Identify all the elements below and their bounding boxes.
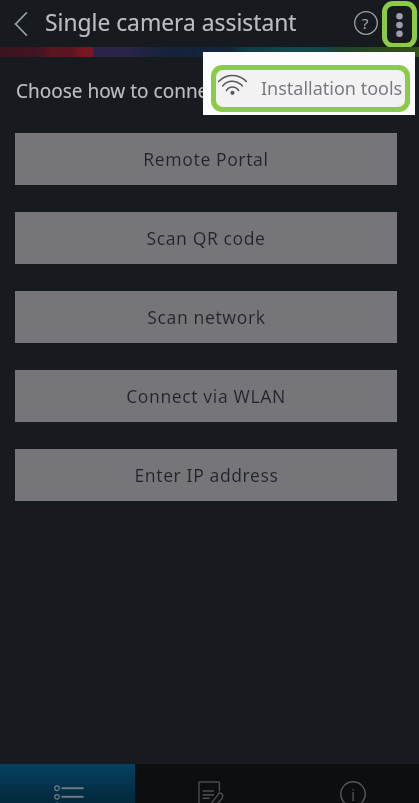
button[interactable]: Connect via WLAN — [15, 370, 397, 422]
button[interactable]: Information — [277, 764, 419, 803]
staticText: Scan QR code — [146, 226, 266, 250]
staticText: Remote Portal — [143, 147, 269, 171]
staticText: Connect via WLAN — [126, 384, 286, 408]
button[interactable]: Enter IP address — [15, 449, 397, 501]
button[interactable]: Scan network — [15, 291, 397, 343]
staticText: ? — [362, 13, 369, 33]
staticText: Choose how to connect — [16, 78, 225, 104]
button[interactable]: Back — [3, 0, 39, 47]
staticText: Enter IP address — [134, 463, 279, 487]
staticText: Installation tools — [261, 76, 403, 101]
button[interactable]: Installation tools — [216, 70, 405, 107]
button[interactable]: Remote Portal — [15, 133, 397, 185]
button[interactable]: More options — [382, 1, 417, 48]
button[interactable]: Help — [344, 0, 388, 47]
button[interactable]: Device list — [0, 764, 135, 803]
button[interactable]: Notes — [135, 764, 277, 803]
staticText: Single camera assistant — [45, 7, 297, 38]
staticText: i — [351, 784, 356, 803]
button[interactable]: Scan QR code — [15, 212, 397, 264]
staticText: Scan network — [147, 305, 266, 329]
